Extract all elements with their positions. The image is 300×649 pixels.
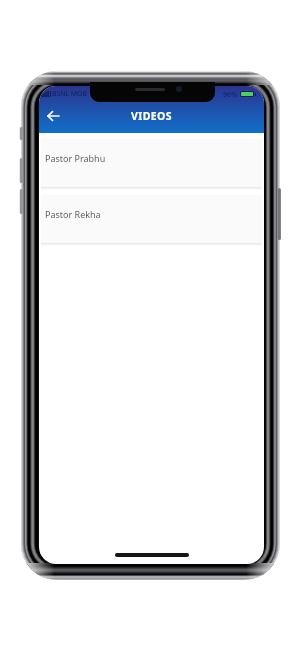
staticText: BSNL MOB — [52, 89, 87, 98]
staticText: VIDEOS — [131, 109, 172, 123]
button[interactable]: Pastor Prabhu — [41, 139, 262, 187]
button[interactable]: Back — [39, 102, 67, 130]
staticText: 96% — [223, 89, 238, 99]
button[interactable]: Pastor Rekha — [41, 195, 262, 243]
staticText: Pastor Rekha — [45, 208, 101, 220]
staticText: Pastor Prabhu — [45, 152, 106, 164]
